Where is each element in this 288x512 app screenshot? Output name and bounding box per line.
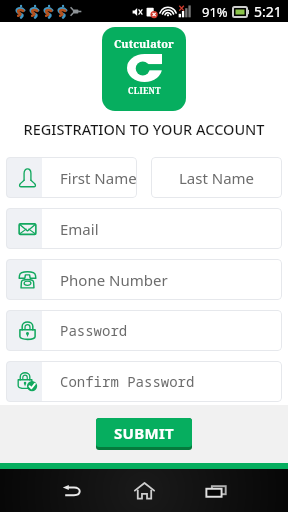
- staticText: SUBMIT: [114, 423, 175, 443]
- button[interactable]: Confirm Password: [6, 361, 282, 402]
- staticText: Phone Number: [60, 270, 168, 290]
- button[interactable]: Recent apps: [192, 469, 240, 512]
- staticText: Password: [60, 321, 128, 340]
- button[interactable]: Email: [6, 208, 282, 249]
- staticText: 91%: [202, 3, 228, 21]
- button[interactable]: Back: [48, 469, 96, 512]
- button[interactable]: First Name: [6, 157, 137, 198]
- staticText: CLIENT: [128, 85, 161, 96]
- staticText: Last Name: [179, 168, 255, 188]
- staticText: Email: [60, 219, 99, 239]
- staticText: First Name: [60, 168, 137, 188]
- staticText: Cutculator: [114, 36, 174, 51]
- button[interactable]: Password: [6, 310, 282, 351]
- button[interactable]: Last Name: [151, 157, 282, 198]
- button[interactable]: Phone Number: [6, 259, 282, 300]
- button[interactable]: SUBMIT: [96, 418, 192, 450]
- staticText: 5:21: [254, 2, 282, 21]
- staticText: REGISTRATION TO YOUR ACCOUNT: [0, 119, 288, 139]
- button[interactable]: Home: [120, 469, 168, 512]
- staticText: Confirm Password: [60, 372, 195, 391]
